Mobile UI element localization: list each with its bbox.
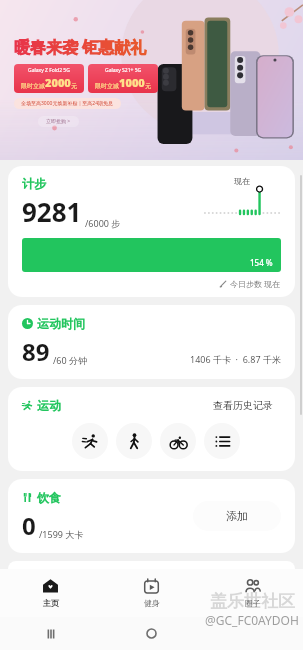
staticText: 元 xyxy=(71,82,77,90)
staticText: /6000 步 xyxy=(85,217,121,229)
button[interactable]: 添加 xyxy=(193,501,281,531)
staticText: 0 xyxy=(22,509,36,542)
staticText: 今日步数 现在 xyxy=(230,278,281,289)
staticText: 主页 xyxy=(43,598,59,608)
staticText: 元 xyxy=(145,82,151,90)
button[interactable]: Run xyxy=(72,423,108,459)
button[interactable]: 运动 xyxy=(8,387,295,471)
button[interactable]: Cycle xyxy=(160,423,196,459)
staticText: 暖春来袭 钜惠献礼 xyxy=(14,36,147,58)
staticText: @GC_FC0AYDOH xyxy=(205,612,299,628)
button[interactable]: More xyxy=(204,423,240,459)
button[interactable]: 暖春来袭 钜惠献礼 xyxy=(0,0,303,160)
staticText: 89 xyxy=(22,335,50,368)
staticText: 圈子 xyxy=(245,598,261,608)
button[interactable]: 健身 xyxy=(101,569,202,617)
staticText: 9281 xyxy=(22,194,82,229)
button[interactable]: Galaxy Z Fold2 5G xyxy=(14,64,84,93)
staticText: Galaxy Z Fold2 5G xyxy=(28,67,70,74)
staticText: 154 % xyxy=(250,257,273,268)
staticText: 1406 千卡 · 6.87 千米 xyxy=(190,353,281,365)
button[interactable]: 运动时间 xyxy=(8,305,295,379)
staticText: 计步 xyxy=(22,176,46,191)
staticText: 查看历史记录 xyxy=(213,399,273,412)
button[interactable]: 立即抢购 > xyxy=(38,116,79,127)
staticText: 健身 xyxy=(144,598,160,608)
staticText: 全场至高3000元焕新补贴｜至高24期免息 xyxy=(21,100,114,107)
button[interactable]: Back xyxy=(202,617,303,650)
button[interactable]: 主页 xyxy=(0,569,101,617)
button[interactable]: 饮食 xyxy=(8,479,295,553)
staticText: 盖乐世社区 xyxy=(210,591,295,612)
button[interactable]: Recent apps xyxy=(0,617,101,650)
button[interactable]: 计步 xyxy=(8,166,295,297)
button[interactable]: 查看历史记录 xyxy=(213,399,273,412)
staticText: 限时立减 xyxy=(21,82,45,90)
button[interactable]: Walk xyxy=(116,423,152,459)
staticText: 添加 xyxy=(226,509,248,523)
button[interactable]: Home xyxy=(101,617,202,650)
staticText: 运动时间 xyxy=(37,316,85,331)
staticText: 运动 xyxy=(37,398,61,413)
staticText: 饮食 xyxy=(37,490,61,505)
staticText: 现在 xyxy=(234,176,250,186)
button[interactable]: 圈子 xyxy=(202,569,303,617)
staticText: /60 分钟 xyxy=(53,354,87,366)
button[interactable]: Galaxy S21+ 5G xyxy=(88,64,158,93)
staticText: 立即抢购 > xyxy=(46,118,71,125)
staticText: 1000 xyxy=(119,75,145,90)
staticText: 限时立减 xyxy=(95,82,119,90)
staticText: 2000 xyxy=(45,75,71,90)
staticText: /1599 大卡 xyxy=(39,528,84,540)
staticText: Galaxy S21+ 5G xyxy=(105,67,142,74)
